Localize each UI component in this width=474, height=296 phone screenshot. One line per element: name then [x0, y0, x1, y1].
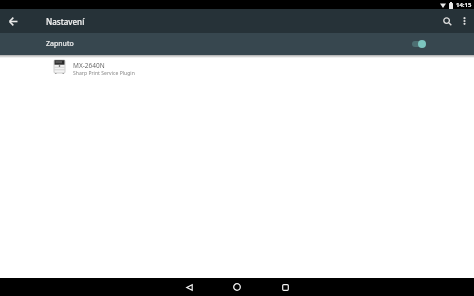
button[interactable]: [410, 38, 426, 50]
button[interactable]: Zapnuto: [0, 33, 474, 55]
button[interactable]: MX-2640N: [54, 59, 135, 77]
button[interactable]: [457, 14, 471, 28]
button[interactable]: [181, 279, 197, 295]
staticText: MX-2640N: [73, 61, 105, 70]
button[interactable]: [5, 13, 21, 29]
button[interactable]: [439, 13, 455, 29]
button[interactable]: [277, 279, 293, 295]
staticText: Sharp Print Service Plugin: [73, 70, 135, 77]
button[interactable]: [229, 279, 245, 295]
staticText: Nastavení: [46, 16, 85, 27]
staticText: 14:15: [456, 1, 472, 9]
staticText: Zapnuto: [46, 39, 74, 49]
